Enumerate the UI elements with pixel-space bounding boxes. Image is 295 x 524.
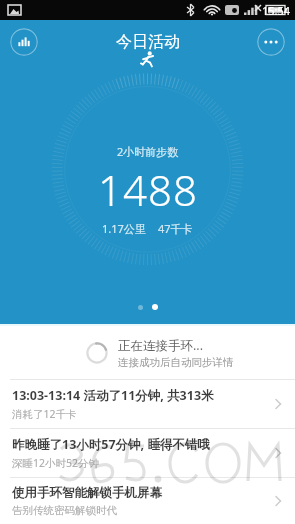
button[interactable]: More options (257, 28, 285, 56)
button[interactable]: 使用手环智能解锁手机屏幕 (0, 478, 295, 524)
staticText: 1488 (98, 161, 198, 218)
staticText: 告别传统密码解锁时代 (12, 504, 117, 517)
button[interactable] (152, 304, 158, 310)
staticText: 1.17公里 (102, 221, 146, 236)
staticText: 连接成功后自动同步详情 (118, 356, 234, 369)
button[interactable]: Statistics (10, 28, 38, 56)
staticText: 15:54 (262, 3, 291, 18)
button[interactable] (138, 305, 143, 310)
button[interactable]: 昨晚睡了13小时57分钟, 睡得不错哦 (0, 429, 295, 477)
staticText: 今日活动 (116, 32, 180, 52)
button[interactable]: 13:03-13:14 活动了11分钟, 共313米 (0, 380, 295, 428)
staticText: 消耗了12千卡 (12, 407, 77, 421)
staticText: 13:03-13:14 活动了11分钟, 共313米 (12, 387, 214, 404)
staticText: 昨晚睡了13小时57分钟, 睡得不错哦 (12, 436, 210, 453)
staticText: 使用手环智能解锁手机屏幕 (12, 485, 162, 501)
button[interactable]: 正在连接手环... (0, 326, 295, 379)
staticText: 深睡12小时52分钟 (12, 456, 100, 470)
staticText: 2小时前步数 (117, 144, 179, 159)
staticText: 正在连接手环... (118, 337, 204, 354)
staticText: 47千卡 (158, 221, 193, 236)
